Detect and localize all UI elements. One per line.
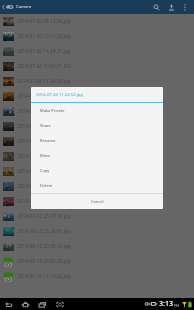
staticText: 2014-08-15 23.00.28.jpg (17, 258, 71, 265)
button[interactable]: 2014-08-11 23.12.11.jpg (0, 179, 194, 194)
button[interactable]: Home (17, 298, 34, 310)
button[interactable]: Screenshot (51, 298, 68, 310)
button[interactable]: 2014-08-15 23.00.28.jpg (0, 254, 194, 269)
button[interactable]: Cancel (31, 194, 163, 209)
button[interactable]: 2014-08-09 11.02.04.jpg (0, 134, 194, 149)
staticText: 2014-08-07 19.22.11.jpg (17, 123, 71, 130)
staticText: Make Private (40, 108, 65, 113)
button[interactable]: 2014-07-28 18.04.03.jpg (0, 89, 194, 104)
button[interactable]: Make Private (31, 103, 163, 118)
staticText: 2014-07-28 18.04.03.jpg (17, 93, 71, 100)
button[interactable]: Rename (31, 133, 163, 148)
button[interactable]: 2014-08-07 19.22.11.jpg (0, 119, 194, 134)
button[interactable]: 2014-08-02 12.11.31.jpg (0, 104, 194, 119)
staticText: PM (174, 303, 180, 308)
staticText: Share (40, 123, 51, 128)
button[interactable]: 2014-07-20 08.13.56.jpg (0, 14, 194, 29)
button[interactable]: Search (148, 0, 164, 14)
staticText: Delete (40, 183, 53, 188)
staticText: 2014-08-12 23.18.16.jpg (17, 213, 71, 220)
staticText: 3:13 (159, 299, 173, 309)
staticText: 2014-08-10 14.30.11.jpg (17, 153, 71, 160)
button[interactable]: 2014-07-26 10.04.01.JPG (0, 59, 194, 74)
button[interactable]: 2014-08-16 12.10.02.jpg (0, 269, 194, 284)
button[interactable]: 2014-08-11 10.21.44.jpg (0, 164, 194, 179)
staticText: 2014-07-20 12.17.32.jpg (17, 33, 71, 40)
staticText: 2014-07-20 08.13.56.jpg (17, 18, 71, 25)
staticText: Rename (40, 138, 56, 143)
button[interactable]: 2014-08-12 23.18.16.jpg (0, 209, 194, 224)
staticText: Move (40, 153, 51, 158)
staticText: 2014-08-09 11.02.04.jpg (17, 138, 71, 145)
button[interactable]: Delete (31, 178, 163, 193)
button[interactable]: 2014-08-12 23.30.16.jpg (0, 239, 194, 254)
staticText: Cancel (91, 199, 104, 204)
button[interactable]: Camera (0, 0, 35, 14)
button[interactable]: 2014-07-20 14.24.31.jpg (0, 44, 194, 59)
button[interactable]: 2014-07-26 11.24.52.jpg (0, 74, 194, 89)
button[interactable]: Back (0, 298, 17, 310)
staticText: 2014-07-26 11.24.52.jpg (17, 78, 71, 85)
button[interactable]: Share (164, 0, 179, 14)
staticText: 2014-08-16 12.10.02.jpg (17, 273, 71, 280)
staticText: Camera (16, 4, 32, 10)
staticText: 2014-08-11 10.21.44.jpg (17, 168, 71, 175)
staticText: 2014-07-26 11.24.52.jpg (36, 92, 83, 98)
button[interactable]: 2014-08-10 14.30.11.jpg (0, 149, 194, 164)
button[interactable]: Share (31, 118, 163, 133)
staticText: 2014-07-26 10.04.01.JPG (17, 63, 72, 70)
button[interactable]: 2014-07-20 12.17.32.jpg (0, 29, 194, 44)
staticText: Copy (40, 168, 50, 173)
staticText: 2014-08-12 23.30.16.jpg (17, 243, 71, 250)
button[interactable]: 2014-08-12 10.22.21.jpg (0, 194, 194, 209)
staticText: 2014-08-02 12.11.31.jpg (17, 108, 71, 115)
button[interactable]: Move (31, 148, 163, 163)
button[interactable]: More options (179, 0, 190, 14)
staticText: 2014-07-20 14.24.31.jpg (17, 48, 71, 55)
staticText: 2014-08-12 23.26.01.jpg (17, 228, 71, 235)
staticText: 2014-08-12 10.22.21.jpg (17, 198, 71, 205)
button[interactable]: 2014-08-12 23.26.01.jpg (0, 224, 194, 239)
staticText: 2014-08-11 23.12.11.jpg (17, 183, 71, 190)
button[interactable]: Copy (31, 163, 163, 178)
button[interactable]: Recent apps (34, 298, 51, 310)
